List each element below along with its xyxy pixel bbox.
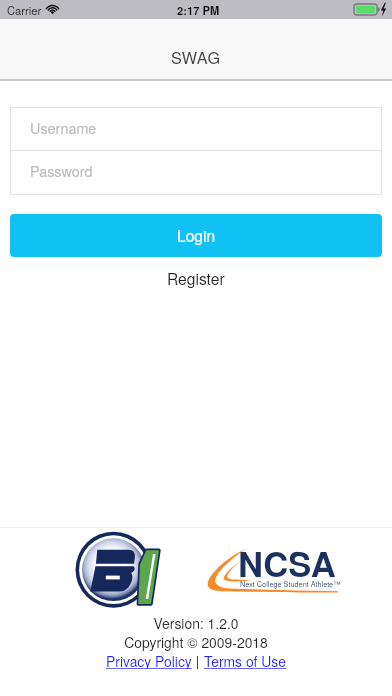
staticText: Next College Student Athlete™ (240, 579, 341, 589)
staticText: Password (30, 160, 93, 181)
button[interactable]: Password (10, 151, 382, 194)
staticText: NCSA (238, 538, 336, 588)
button[interactable]: Username (10, 107, 382, 150)
staticText: Carrier (7, 2, 42, 18)
staticText: 2:17 PM (177, 2, 220, 18)
button[interactable]: Terms of Use (204, 651, 287, 669)
button[interactable]: Register (0, 268, 392, 290)
staticText: SWAG (171, 45, 221, 68)
other: Battery charging (354, 4, 388, 15)
staticText: Register (167, 267, 225, 289)
other: B1 logo (74, 528, 166, 610)
staticText: Version: 1.2.0 (153, 613, 239, 633)
staticText: | (192, 651, 204, 669)
staticText: Copyright © 2009-2018 (124, 632, 268, 652)
staticText: Login (177, 224, 216, 246)
button[interactable]: Privacy Policy (106, 651, 192, 669)
other: Wi-Fi signal (46, 4, 59, 13)
button[interactable]: Login (10, 214, 382, 257)
other: NCSA logo (200, 543, 345, 595)
staticText: Username (30, 117, 97, 138)
